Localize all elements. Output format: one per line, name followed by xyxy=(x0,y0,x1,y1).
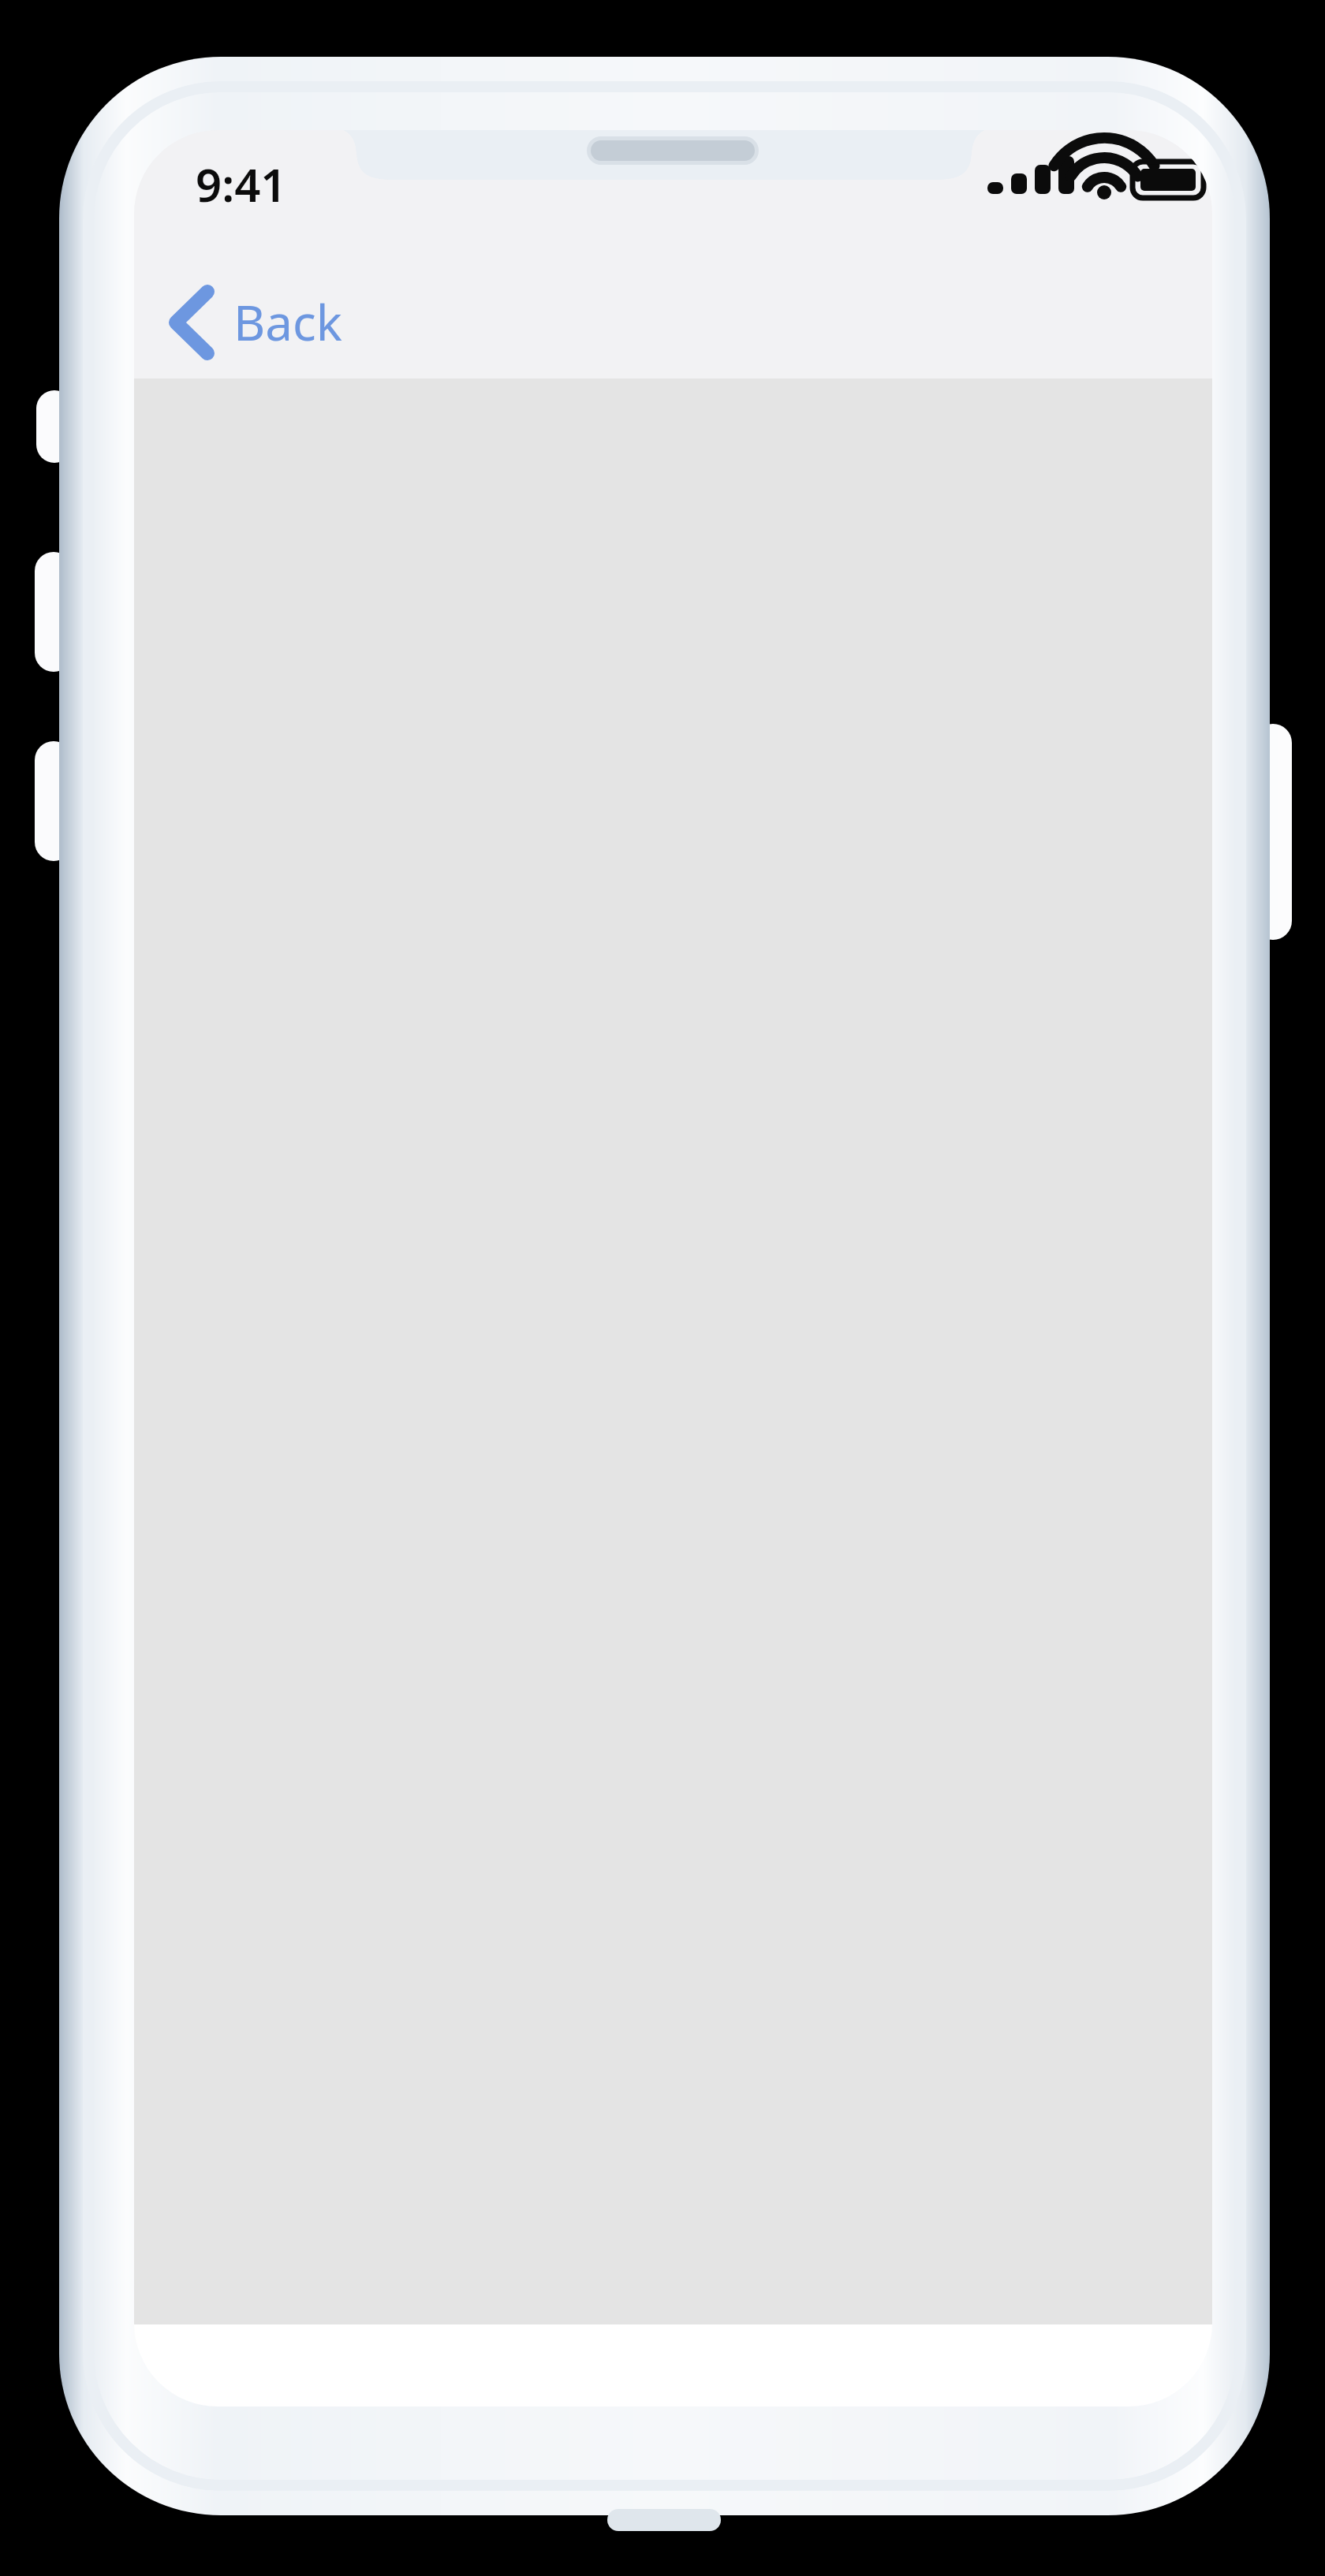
button[interactable]: Back xyxy=(155,273,369,371)
staticText: Back xyxy=(233,289,342,355)
staticText: 9:41 xyxy=(196,153,287,215)
